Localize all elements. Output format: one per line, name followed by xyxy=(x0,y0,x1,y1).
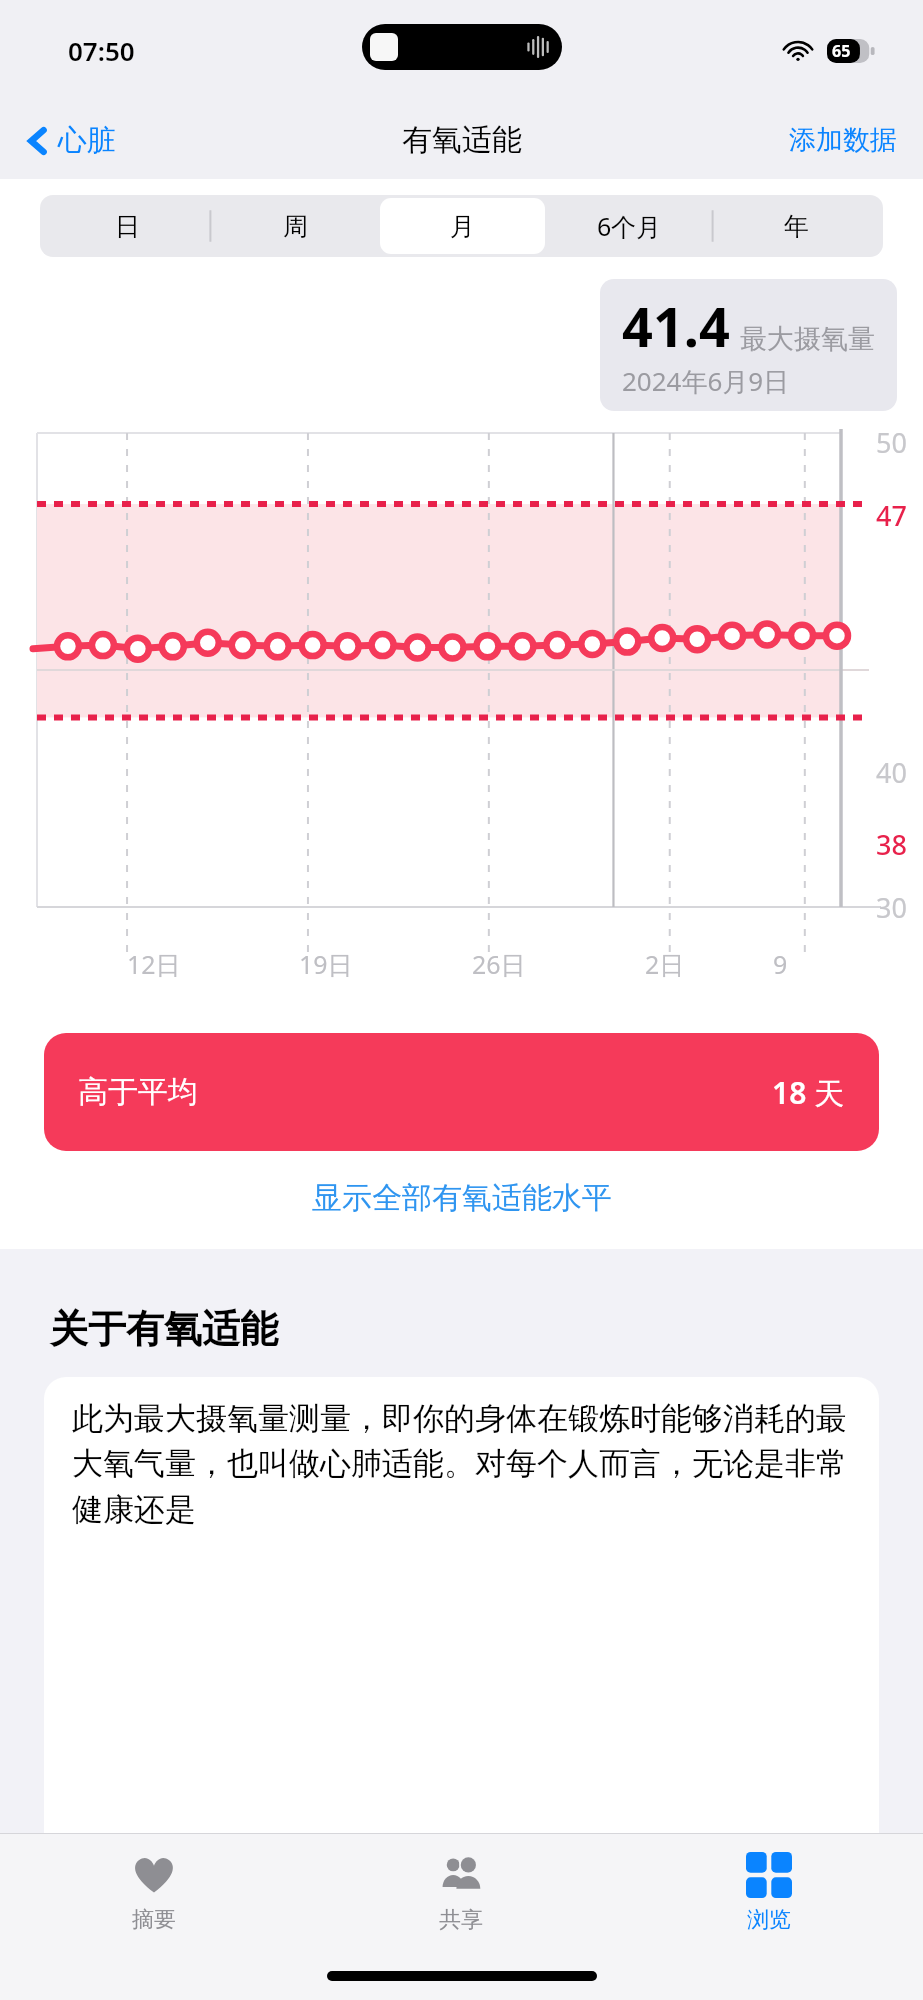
button[interactable]: 浏览 xyxy=(615,1834,923,1952)
staticText: 最大摄氧量 xyxy=(740,322,875,356)
staticText: 50 xyxy=(876,424,907,461)
staticText: 47 xyxy=(876,497,907,534)
staticText: 显示全部有氧适能水平 xyxy=(312,1179,612,1217)
staticText: 月 xyxy=(450,211,475,242)
staticText: 关于有氧适能 xyxy=(50,1305,278,1353)
staticText: 30 xyxy=(876,889,907,926)
staticText: 41.4 xyxy=(622,289,730,363)
staticText: 有氧适能 xyxy=(402,121,522,159)
button[interactable]: 6个月 xyxy=(547,198,712,254)
staticText: 2024年6月9日 xyxy=(622,363,790,399)
button[interactable]: 显示全部有氧适能水平 xyxy=(0,1173,923,1223)
staticText: 此为最大摄氧量测量，即你的身体在锻炼时能够消耗的最大氧气量，也叫做心肺适能。对每… xyxy=(72,1399,851,1530)
button[interactable]: 日 xyxy=(44,198,210,254)
staticText: 日 xyxy=(115,211,140,242)
staticText: 19日 xyxy=(299,947,353,981)
staticText: 高于平均 xyxy=(78,1073,198,1111)
button[interactable]: 月 xyxy=(380,198,545,254)
staticText: 周 xyxy=(283,211,308,242)
staticText: 6个月 xyxy=(597,209,662,243)
staticText: 浏览 xyxy=(747,1906,791,1934)
staticText: 40 xyxy=(876,754,907,791)
button[interactable]: 高于平均 xyxy=(44,1033,879,1151)
button[interactable]: 添加数据 xyxy=(783,117,903,163)
staticText: 65 xyxy=(832,40,851,62)
button[interactable]: 心脏 xyxy=(22,114,122,167)
staticText: 9 xyxy=(773,947,788,981)
staticText: 2日 xyxy=(645,947,685,981)
button[interactable]: 周 xyxy=(212,198,378,254)
button[interactable]: 摘要 xyxy=(0,1834,307,1952)
staticText: 心脏 xyxy=(58,122,116,159)
staticText: 07:50 xyxy=(68,33,135,68)
staticText: 26日 xyxy=(472,947,526,981)
button[interactable]: 年 xyxy=(714,198,879,254)
staticText: 共享 xyxy=(439,1906,483,1934)
staticText: 年 xyxy=(784,211,809,242)
staticText: 摘要 xyxy=(132,1906,176,1934)
staticText: 12日 xyxy=(127,947,181,981)
staticText: 18 天 xyxy=(772,1072,845,1113)
button[interactable]: 共享 xyxy=(307,1834,615,1952)
staticText: 38 xyxy=(876,826,907,863)
